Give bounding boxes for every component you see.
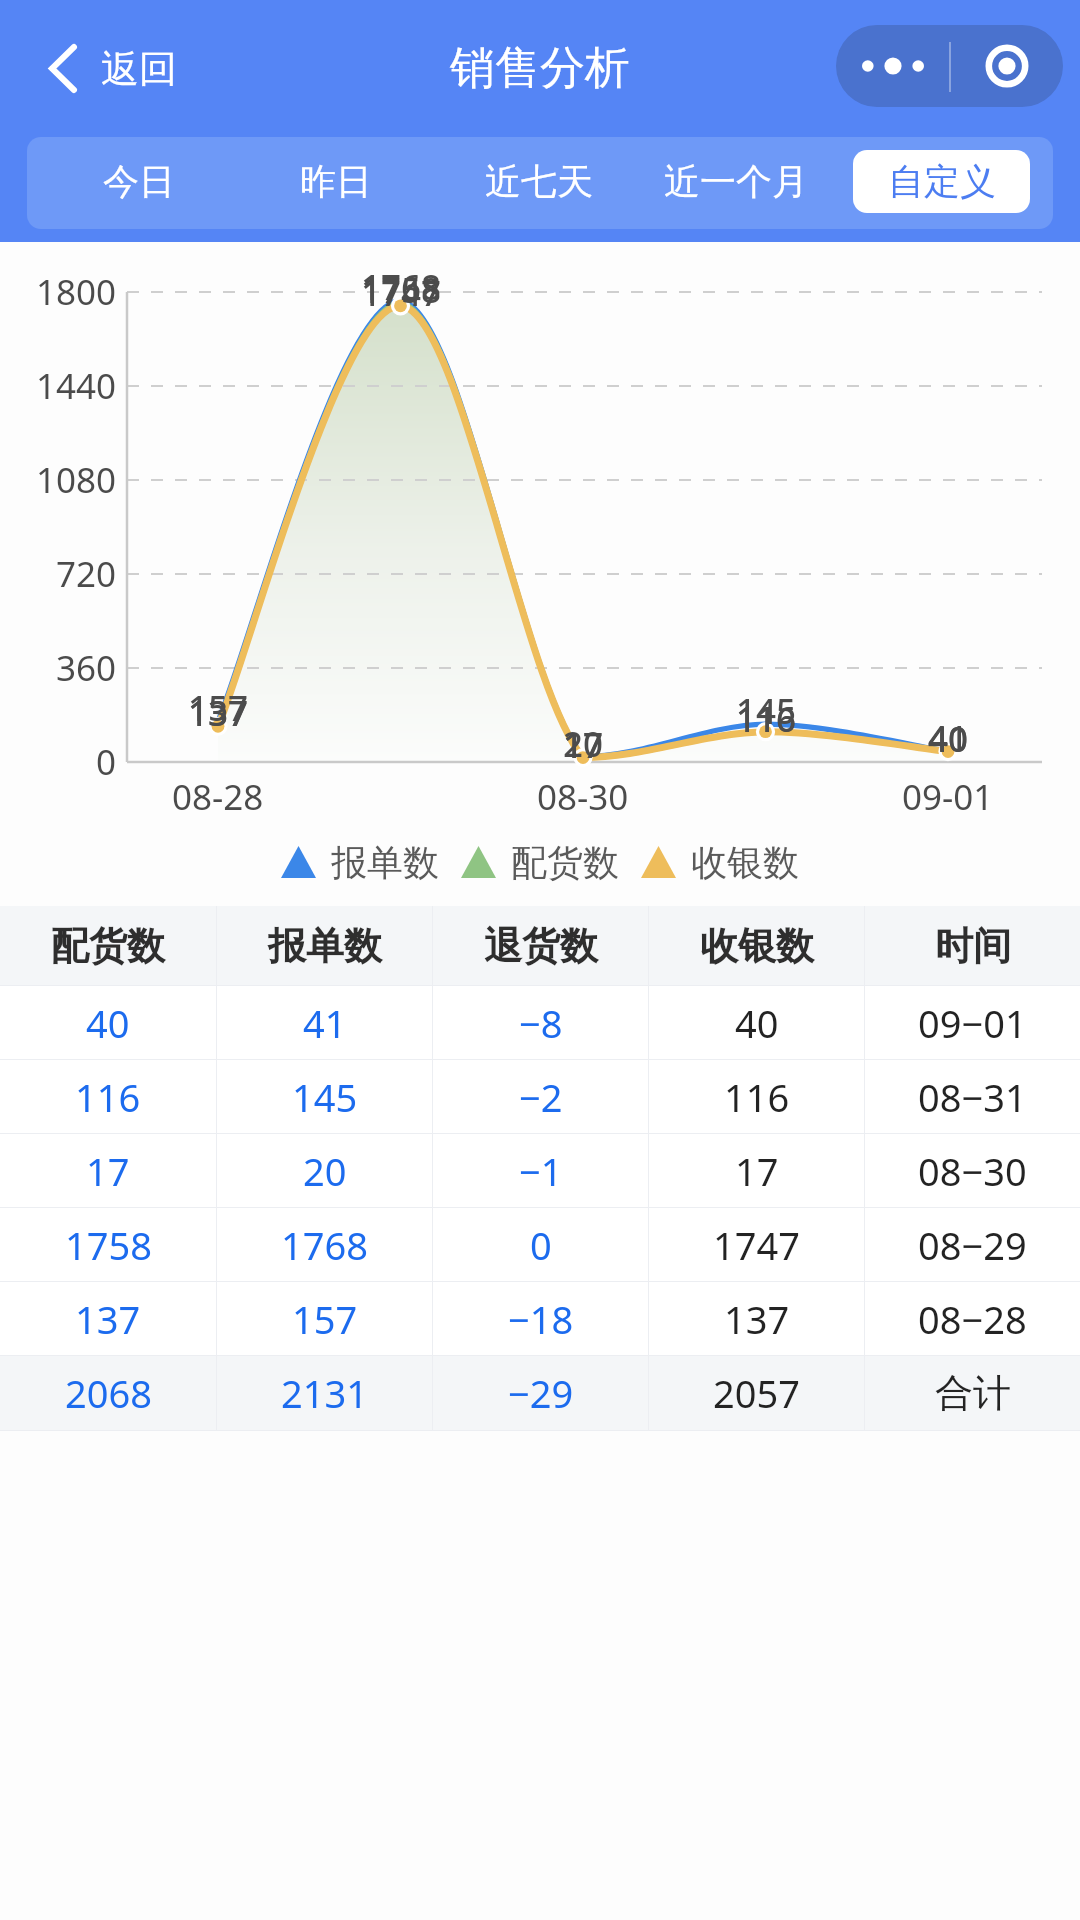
staticText: 1747: [361, 269, 442, 317]
button[interactable]: Close mini program: [951, 25, 1063, 107]
button[interactable]: 40: [649, 986, 864, 1059]
button[interactable]: 1758: [0, 1208, 216, 1281]
button[interactable]: 116: [0, 1060, 216, 1133]
button[interactable]: 09−01: [865, 986, 1080, 1059]
staticText: 17: [86, 1145, 130, 1197]
staticText: 合计: [935, 1369, 1011, 1417]
staticText: 145: [736, 687, 797, 735]
button[interactable]: 收银数: [649, 906, 864, 985]
button[interactable]: 合计: [865, 1356, 1080, 1430]
staticText: −2: [519, 1071, 563, 1123]
staticText: −8: [519, 997, 563, 1049]
staticText: 40: [86, 997, 130, 1049]
staticText: 1440: [35, 362, 116, 410]
button[interactable]: 41: [217, 986, 432, 1059]
button[interactable]: 近一个月: [601, 150, 871, 213]
button[interactable]: 退货数: [433, 906, 648, 985]
staticText: 2057: [713, 1367, 800, 1419]
staticText: 08-28: [172, 773, 264, 821]
button[interactable]: 今日: [64, 150, 214, 213]
staticText: 1747: [713, 1219, 800, 1271]
button[interactable]: 40: [0, 986, 216, 1059]
button[interactable]: 报单数: [217, 906, 432, 985]
staticText: 137: [724, 1293, 790, 1345]
staticText: 1768: [361, 263, 442, 311]
staticText: 137: [75, 1293, 141, 1345]
button[interactable]: −29: [433, 1356, 648, 1430]
staticText: 1800: [35, 268, 116, 316]
button[interactable]: 20: [217, 1134, 432, 1207]
staticText: 今日: [103, 159, 175, 204]
staticText: 720: [55, 550, 116, 598]
staticText: 40: [735, 997, 779, 1049]
staticText: 近七天: [485, 159, 593, 204]
staticText: 报单数: [268, 922, 382, 970]
staticText: 销售分析: [450, 40, 630, 97]
button[interactable]: 昨日: [261, 150, 411, 213]
button[interactable]: 137: [649, 1282, 864, 1355]
staticText: 157: [188, 684, 249, 732]
staticText: 116: [724, 1071, 790, 1123]
staticText: 2068: [65, 1367, 152, 1419]
button[interactable]: 0: [433, 1208, 648, 1281]
button[interactable]: 17: [649, 1134, 864, 1207]
staticText: −29: [508, 1367, 574, 1419]
button[interactable]: 08−28: [865, 1282, 1080, 1355]
staticText: 收银数: [700, 922, 814, 970]
staticText: 配货数: [51, 922, 165, 970]
staticText: 41: [303, 997, 347, 1049]
staticText: 返回: [101, 45, 177, 93]
staticText: 41: [928, 714, 969, 762]
button[interactable]: 返回: [49, 44, 177, 93]
staticText: 09−01: [918, 997, 1027, 1049]
staticText: 自定义: [888, 159, 996, 204]
staticText: 360: [55, 644, 116, 692]
staticText: 17: [563, 721, 604, 769]
button[interactable]: 收银数: [641, 834, 799, 890]
button[interactable]: 1747: [649, 1208, 864, 1281]
button[interactable]: 2131: [217, 1356, 432, 1430]
staticText: 收银数: [691, 840, 799, 885]
staticText: 116: [736, 695, 797, 743]
button[interactable]: 近七天: [434, 150, 644, 213]
button[interactable]: 时间: [865, 906, 1080, 985]
staticText: 退货数: [484, 922, 598, 970]
staticText: 40: [928, 715, 969, 763]
staticText: 1080: [35, 456, 116, 504]
button[interactable]: 2057: [649, 1356, 864, 1430]
button[interactable]: 2068: [0, 1356, 216, 1430]
button[interactable]: 自定义: [853, 150, 1030, 213]
button[interactable]: 17: [0, 1134, 216, 1207]
staticText: 报单数: [331, 840, 439, 885]
staticText: 137: [188, 689, 249, 737]
button[interactable]: −8: [433, 986, 648, 1059]
button[interactable]: 137: [0, 1282, 216, 1355]
staticText: 137: [188, 689, 249, 737]
button[interactable]: 145: [217, 1060, 432, 1133]
staticText: 时间: [935, 922, 1011, 970]
staticText: 09-01: [902, 773, 994, 821]
staticText: 08−30: [918, 1145, 1027, 1197]
staticText: 08−28: [918, 1293, 1027, 1345]
staticText: 0: [95, 738, 116, 786]
button[interactable]: 116: [649, 1060, 864, 1133]
staticText: 08−31: [918, 1071, 1027, 1123]
button[interactable]: −18: [433, 1282, 648, 1355]
staticText: 配货数: [511, 840, 619, 885]
staticText: 40: [928, 715, 969, 763]
button[interactable]: 配货数: [461, 834, 619, 890]
button[interactable]: −1: [433, 1134, 648, 1207]
button[interactable]: 报单数: [281, 834, 439, 890]
button[interactable]: 08−29: [865, 1208, 1080, 1281]
button[interactable]: −2: [433, 1060, 648, 1133]
button[interactable]: 157: [217, 1282, 432, 1355]
button[interactable]: 配货数: [0, 906, 216, 985]
staticText: 08−29: [918, 1219, 1027, 1271]
staticText: 20: [303, 1145, 347, 1197]
staticText: 08-30: [537, 773, 629, 821]
button[interactable]: 1768: [217, 1208, 432, 1281]
button[interactable]: 08−30: [865, 1134, 1080, 1207]
staticText: −1: [519, 1145, 563, 1197]
button[interactable]: More options: [836, 25, 949, 107]
button[interactable]: 08−31: [865, 1060, 1080, 1133]
